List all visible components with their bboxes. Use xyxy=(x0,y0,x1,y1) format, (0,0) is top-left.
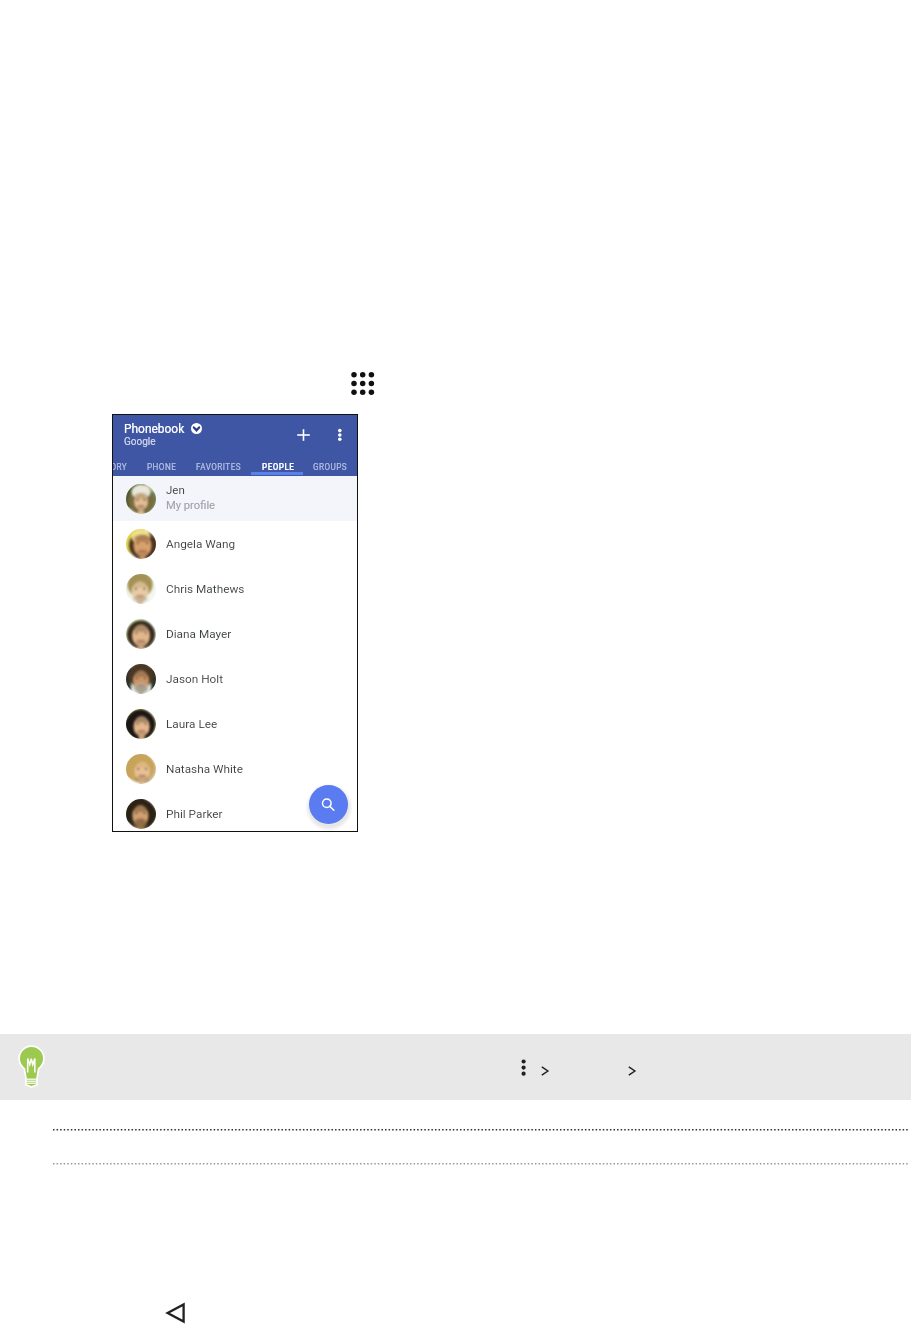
staticText: Jason Holt xyxy=(166,672,224,686)
staticText: Angela Wang xyxy=(166,537,236,551)
button[interactable]: More options xyxy=(336,427,344,443)
staticText: Chris Mathews xyxy=(166,582,245,596)
staticText: Jen xyxy=(166,483,185,496)
button[interactable]: Add contact xyxy=(297,429,310,441)
button[interactable]: Phil Parker xyxy=(113,791,357,831)
button[interactable]: Search xyxy=(309,785,348,824)
button[interactable]: Chris Mathews xyxy=(113,566,357,611)
button[interactable]: Switch account xyxy=(191,423,202,434)
staticText: My profile xyxy=(166,499,216,512)
button[interactable]: Diana Mayer xyxy=(113,611,357,656)
button[interactable]: Back xyxy=(166,1303,185,1323)
staticText: PEOPLE xyxy=(262,462,295,472)
staticText: STORY xyxy=(113,462,128,472)
button[interactable]: Natasha White xyxy=(113,746,357,791)
staticText: Natasha White xyxy=(166,762,243,776)
staticText: PHONE xyxy=(147,462,177,472)
staticText: Phil Parker xyxy=(166,807,223,821)
button[interactable]: More options xyxy=(519,1059,529,1076)
staticText: Laura Lee xyxy=(166,717,218,731)
staticText: GROUPS xyxy=(313,462,348,472)
button[interactable]: Jen xyxy=(113,476,357,521)
staticText: Google xyxy=(124,436,156,448)
button[interactable]: Laura Lee xyxy=(113,701,357,746)
button[interactable]: Jason Holt xyxy=(113,656,357,701)
staticText: Diana Mayer xyxy=(166,627,232,641)
staticText: FAVORITES xyxy=(196,462,242,472)
button[interactable]: Apps xyxy=(351,372,375,396)
button[interactable]: Angela Wang xyxy=(113,521,357,566)
staticText: Phonebook xyxy=(124,422,185,436)
